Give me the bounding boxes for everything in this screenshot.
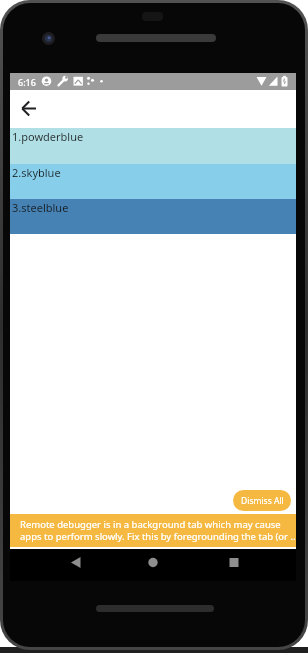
button[interactable]: Dismiss All — [233, 490, 291, 511]
staticText: 3.steelblue — [12, 200, 69, 215]
button[interactable] — [21, 100, 38, 117]
staticText: 1.powderblue — [12, 129, 84, 144]
button[interactable]: Remote debugger is in a background tab w… — [10, 514, 296, 547]
staticText: 2.skyblue — [12, 165, 61, 180]
staticText: Remote debugger is in a background tab w… — [20, 518, 296, 543]
staticText: 6:16 — [18, 76, 36, 88]
button[interactable]: 1.powderblue — [10, 128, 296, 164]
button[interactable]: 2.skyblue — [10, 164, 296, 199]
button[interactable] — [71, 557, 81, 568]
staticText: Dismiss All — [241, 495, 284, 507]
button[interactable] — [148, 557, 158, 568]
button[interactable] — [229, 557, 239, 568]
button[interactable]: 3.steelblue — [10, 199, 296, 234]
